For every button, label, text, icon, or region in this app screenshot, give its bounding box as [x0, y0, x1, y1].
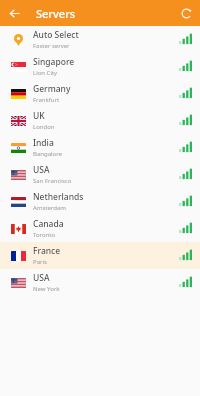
button[interactable]: Singapore [0, 53, 200, 80]
staticText: London [33, 123, 55, 131]
button[interactable]: India [0, 134, 200, 161]
button[interactable]: USA [0, 269, 200, 296]
staticText: Netherlands [33, 191, 84, 203]
staticText: Canada [33, 218, 64, 230]
staticText: Singapore [33, 56, 75, 68]
staticText: Faster server [33, 42, 70, 50]
staticText: UK [33, 110, 45, 122]
staticText: New York [33, 285, 60, 293]
staticText: India [33, 137, 54, 149]
button[interactable]: France [0, 242, 200, 269]
staticText: Amsterdam [33, 204, 66, 212]
button[interactable]: Canada [0, 215, 200, 242]
staticText: Paris [33, 258, 47, 266]
staticText: Germany [33, 83, 71, 95]
staticText: USA [33, 164, 50, 176]
staticText: USA [33, 272, 50, 284]
staticText: San Francisco [33, 177, 72, 185]
staticText: Bangalore [33, 150, 62, 158]
button[interactable]: Auto Select [0, 26, 200, 53]
button[interactable]: Back [5, 4, 23, 22]
staticText: France [33, 245, 61, 257]
button[interactable]: UK [0, 107, 200, 134]
staticText: Auto Select [33, 29, 79, 41]
staticText: Servers [36, 6, 76, 21]
button[interactable]: Netherlands [0, 188, 200, 215]
button[interactable]: USA [0, 161, 200, 188]
button[interactable]: Germany [0, 80, 200, 107]
staticText: Frankfurt [33, 96, 60, 104]
staticText: Lion City [33, 69, 58, 77]
button[interactable]: Refresh [177, 4, 195, 22]
staticText: Toronto [33, 231, 56, 239]
